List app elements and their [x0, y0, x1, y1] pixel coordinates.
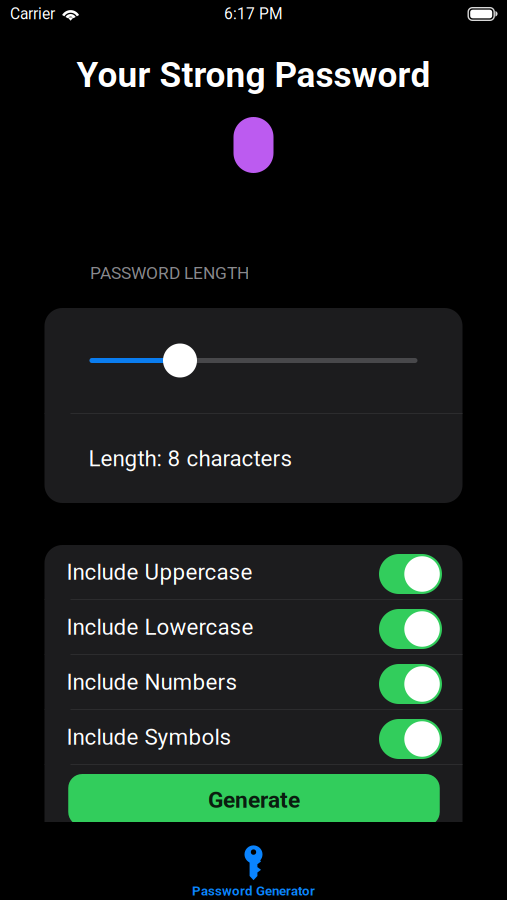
- staticText: PASSWORD LENGTH: [90, 263, 249, 283]
- staticText: Carrier: [10, 5, 55, 23]
- staticText: Length: 8 characters: [88, 445, 292, 472]
- button[interactable]: Include Lowercase: [44, 600, 462, 654]
- button[interactable]: Include Numbers: [44, 655, 462, 709]
- staticText: Include Uppercase: [66, 559, 252, 585]
- staticText: Include Symbols: [66, 724, 231, 750]
- button[interactable]: Include Uppercase: [44, 545, 462, 599]
- staticText: Include Numbers: [66, 669, 237, 695]
- staticText: Password Generator: [192, 883, 315, 899]
- button[interactable]: Password Generator: [0, 822, 507, 900]
- staticText: 6:17 PM: [224, 5, 283, 23]
- staticText: Generate: [208, 787, 300, 813]
- button[interactable]: Include Symbols: [44, 710, 462, 764]
- button[interactable]: Generate: [68, 774, 440, 826]
- staticText: Your Strong Password: [76, 54, 430, 96]
- staticText: Include Lowercase: [66, 614, 253, 640]
